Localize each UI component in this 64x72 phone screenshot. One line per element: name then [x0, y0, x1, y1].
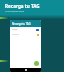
staticText: Monto: [12, 33, 19, 36]
button[interactable]: Monto: [10, 32, 41, 37]
staticText: Saldo: [12, 28, 18, 31]
staticText: Ya lo puedes hacer: [5, 10, 25, 13]
button[interactable]: Saldo: [10, 27, 41, 32]
button[interactable]: Add: [34, 61, 39, 66]
staticText: Recarga tu TAG: [12, 22, 31, 26]
staticText: Recarga tu TAG: [5, 3, 40, 9]
